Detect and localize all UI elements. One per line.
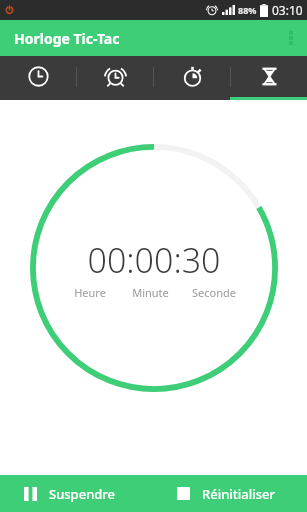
staticText: Minute xyxy=(132,285,169,300)
button[interactable]: Alarm xyxy=(77,56,153,97)
staticText: 88% xyxy=(238,4,257,16)
button[interactable]: Stopwatch xyxy=(154,56,230,97)
button[interactable]: Timer xyxy=(231,56,307,97)
button[interactable]: Suspendre xyxy=(0,475,153,512)
button[interactable]: Réinitialiser xyxy=(153,475,307,512)
staticText: Heure xyxy=(74,285,106,300)
button[interactable]: Clock xyxy=(0,56,76,97)
staticText: Réinitialiser xyxy=(202,485,276,503)
staticText: Suspendre xyxy=(49,485,116,503)
staticText: 03:10 xyxy=(272,2,303,18)
staticText: Seconde xyxy=(192,285,236,300)
staticText: Horloge Tic-Tac xyxy=(14,29,120,48)
staticText: 00:00:30 xyxy=(87,237,221,283)
